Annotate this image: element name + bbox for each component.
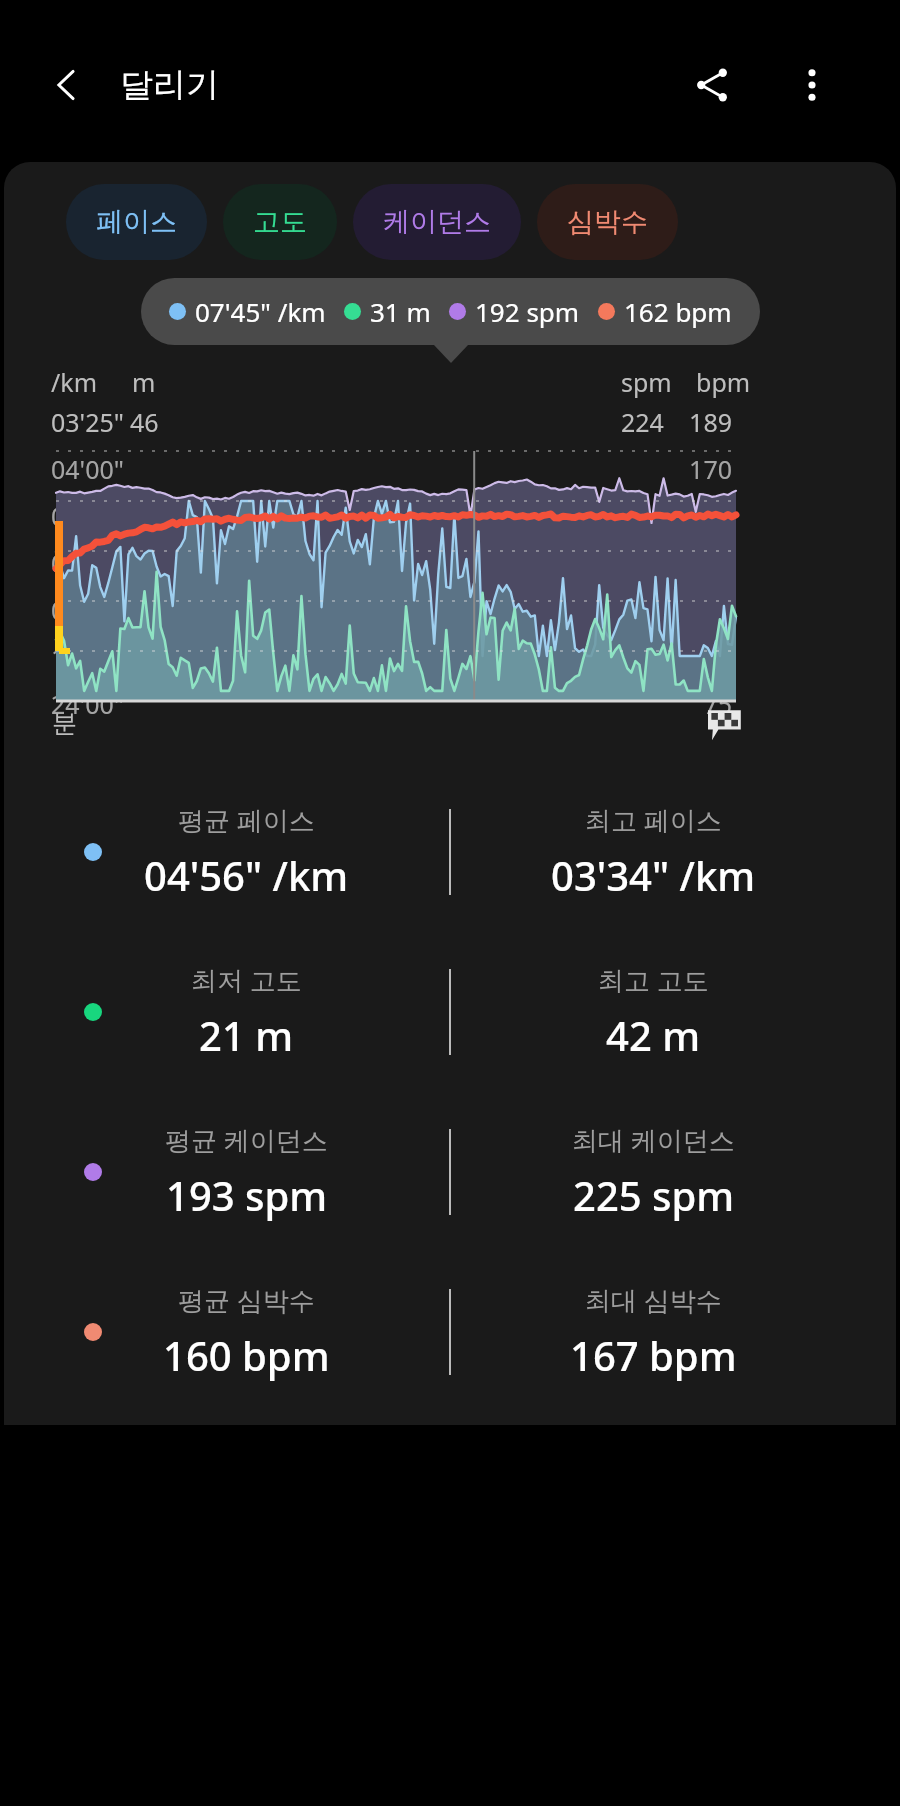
button[interactable]: 07'45" /km — [141, 278, 760, 345]
staticText: 162 bpm — [624, 294, 732, 329]
staticText: 04'56" /km — [144, 848, 349, 902]
staticText: 최저 고도 — [191, 962, 302, 998]
staticText: m — [132, 365, 156, 399]
staticText: 08'00" — [51, 593, 125, 627]
staticText: 최대 심박수 — [585, 1282, 722, 1318]
staticText: 분 — [52, 708, 77, 739]
staticText: 21 m — [199, 1008, 294, 1062]
button[interactable]: 심박수 — [537, 184, 678, 260]
staticText: 최고 고도 — [598, 962, 709, 998]
staticText: bpm — [696, 365, 751, 399]
staticText: 평균 심박수 — [178, 1282, 315, 1318]
staticText: 24'00" — [51, 687, 125, 721]
staticText: 192 spm — [475, 294, 580, 329]
staticText: 케이던스 — [383, 205, 491, 239]
staticText: 224 — [621, 405, 664, 439]
staticText: 고도 — [253, 205, 307, 239]
staticText: 심박수 — [567, 205, 648, 239]
staticText: 42 m — [606, 1008, 701, 1062]
button[interactable]: 케이던스 — [353, 184, 521, 260]
staticText: 225 spm — [573, 1168, 735, 1222]
staticText: /km — [51, 365, 98, 399]
staticText: 06'00" — [51, 546, 125, 580]
staticText: 94 — [674, 640, 732, 674]
staticText: 최고 페이스 — [585, 802, 722, 838]
button[interactable]: Back — [30, 48, 104, 122]
staticText: 160 bpm — [163, 1328, 330, 1382]
staticText: 189 — [674, 405, 732, 439]
staticText: 04'48" — [51, 499, 125, 533]
staticText: 달리기 — [120, 64, 219, 106]
staticText: 167 bpm — [570, 1328, 737, 1382]
staticText: 151 — [674, 499, 732, 533]
staticText: 31 m — [370, 294, 431, 329]
staticText: 페이스 — [96, 205, 177, 239]
staticText: spm — [621, 365, 672, 399]
staticText: 12'00" — [51, 640, 125, 674]
staticText: 평균 케이던스 — [165, 1122, 328, 1158]
staticText: 03'34" /km — [551, 848, 756, 902]
staticText: 07'45" /km — [195, 294, 326, 329]
button[interactable]: 페이스 — [66, 184, 207, 260]
button[interactable]: Share — [674, 47, 750, 123]
staticText: 75 — [674, 687, 732, 721]
button[interactable]: 고도 — [223, 184, 337, 260]
staticText: 170 — [674, 452, 732, 486]
staticText: 193 spm — [166, 1168, 328, 1222]
button[interactable]: More options — [774, 47, 850, 123]
staticText: 113 — [674, 593, 732, 627]
other: Finish — [704, 703, 744, 743]
staticText: 132 — [674, 546, 732, 580]
staticText: 평균 페이스 — [178, 802, 315, 838]
staticText: 03'25" — [51, 405, 125, 439]
staticText: 46 — [130, 405, 159, 439]
staticText: 04'00" — [51, 452, 125, 486]
staticText: 최대 케이던스 — [572, 1122, 735, 1158]
